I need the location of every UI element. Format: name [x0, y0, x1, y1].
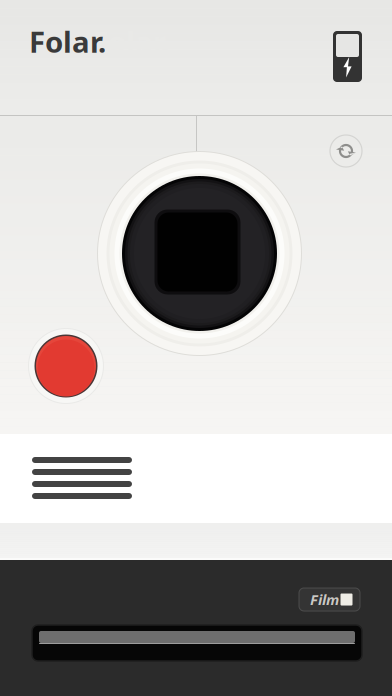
staticText: Folar. [29, 22, 106, 61]
button[interactable]: Switch camera [329, 134, 363, 168]
button[interactable]: Menu [20, 445, 144, 511]
button[interactable]: Flash [333, 31, 362, 82]
staticText: Film [310, 590, 339, 609]
button[interactable]: Film [299, 588, 360, 611]
staticText: Folar. [92, 22, 169, 61]
